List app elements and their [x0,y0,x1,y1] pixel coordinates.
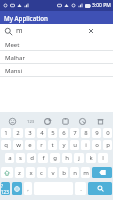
staticText: Mansi [5,67,22,75]
staticText: 6 [62,129,66,137]
button[interactable]: f [38,153,48,163]
staticText: t [51,141,54,149]
staticText: 2 [16,129,20,137]
button[interactable]: o [92,140,101,150]
button[interactable]: m [81,167,90,178]
staticText: v [51,169,55,177]
button[interactable]: e [25,140,35,150]
button[interactable]: z [15,167,24,178]
staticText: g [53,154,57,162]
button[interactable]: Shift [1,167,13,178]
staticText: m [83,169,89,177]
button[interactable]: l [98,153,108,163]
staticText: 9 [95,129,99,137]
button[interactable]: Mansi [0,64,113,77]
button[interactable]: u [70,140,79,150]
staticText: 7 [73,129,77,137]
button[interactable]: Clipboard [61,117,70,126]
staticText: 0 [106,129,110,137]
staticText: h [65,154,69,162]
button[interactable]: Meet [0,38,113,51]
button[interactable]: 0 [103,128,112,138]
button[interactable]: 5 [48,128,57,138]
button[interactable]: g [50,153,60,163]
button[interactable]: Malhar [0,51,113,64]
staticText: 5 [51,129,55,137]
staticText: ?123 [1,183,10,195]
button[interactable]: x [26,167,35,178]
button[interactable]: Emoji [8,117,17,126]
staticText: My Application [4,14,48,22]
button[interactable]: h [62,153,72,163]
staticText: y [62,141,66,149]
staticText: j [78,154,80,162]
button[interactable]: Stickers [43,117,52,126]
staticText: Malhar [5,54,25,62]
button[interactable]: v [48,167,57,178]
staticText: s [19,154,22,162]
button[interactable]: Clear search [86,26,96,36]
staticText: z [18,169,21,177]
button[interactable]: Change language [12,182,22,195]
button[interactable]: 8 [81,128,90,138]
button[interactable]: Numbers [26,117,35,126]
button[interactable]: k [86,153,96,163]
button[interactable]: s [16,153,25,163]
staticText: 4 [40,129,44,137]
button[interactable]: j [74,153,84,163]
button[interactable]: y [59,140,68,150]
button[interactable]: Delete [96,117,105,126]
staticText: l [102,154,104,162]
button[interactable]: Backspace [92,167,112,178]
button[interactable]: 1 [1,128,11,138]
button[interactable]: d [27,153,36,163]
button[interactable]: 2 [13,128,23,138]
button[interactable]: n [70,167,79,178]
button[interactable]: i [81,140,90,150]
staticText: a [8,154,12,162]
button[interactable]: 7 [70,128,79,138]
staticText: n [73,169,77,177]
staticText: b [62,169,66,177]
button[interactable]: . [75,182,86,195]
button[interactable]: t [48,140,57,150]
button[interactable]: 4 [37,128,46,138]
staticText: u [73,141,77,149]
staticText: k [89,154,93,162]
staticText: e [28,141,32,149]
staticText: 123 [27,119,35,125]
staticText: o [95,141,99,149]
button[interactable]: w [13,140,23,150]
staticText: i [85,141,87,149]
button[interactable]: 3 [25,128,35,138]
button[interactable]: 6 [59,128,68,138]
staticText: , [27,185,29,193]
staticText: w [16,141,21,149]
button[interactable]: p [103,140,112,150]
staticText: Meet [5,41,20,49]
staticText: x [29,169,33,177]
staticText: 3 [28,129,32,137]
button[interactable]: a [5,153,14,163]
button[interactable]: c [37,167,46,178]
button[interactable]: Settings [78,117,87,126]
staticText: . [80,185,82,193]
staticText: d [30,154,34,162]
staticText: m [16,26,23,36]
staticText: 1 [4,129,8,137]
button[interactable]: Search [88,182,112,195]
button[interactable]: q [1,140,11,150]
button[interactable]: Search [0,24,113,38]
staticText: f [42,154,45,162]
button[interactable]: Search [4,27,13,36]
button[interactable]: Symbols [1,182,10,195]
staticText: q [4,141,8,149]
button[interactable]: b [59,167,68,178]
button[interactable]: r [37,140,46,150]
button[interactable]: , [24,182,32,195]
staticText: p [106,141,110,149]
staticText: 8 [84,129,88,137]
staticText: c [40,169,43,177]
button[interactable]: 9 [92,128,101,138]
